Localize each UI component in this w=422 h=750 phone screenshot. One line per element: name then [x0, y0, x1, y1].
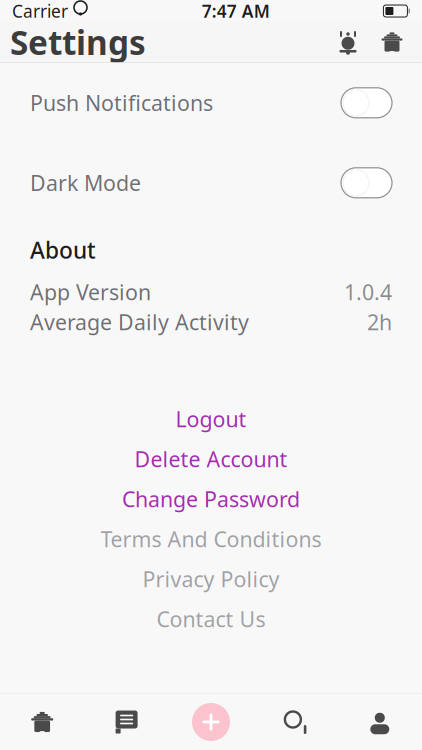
staticText: Privacy Policy [142, 565, 279, 593]
staticText: Settings [10, 20, 146, 64]
button[interactable]: Push Notifications [0, 63, 422, 143]
button[interactable]: Dark Mode [0, 143, 422, 223]
staticText: 2h [367, 308, 392, 336]
button[interactable]: Search [253, 694, 338, 750]
staticText: About [30, 235, 96, 265]
staticText: Delete Account [134, 445, 287, 473]
staticText: Dark Mode [30, 169, 141, 197]
staticText: Carrier [12, 0, 68, 22]
button[interactable]: Notifications [326, 22, 370, 62]
staticText: Push Notifications [30, 89, 213, 117]
button[interactable]: Privacy Policy [0, 559, 422, 599]
staticText: Contact Us [156, 605, 265, 633]
staticText: Average Daily Activity [30, 308, 249, 336]
button[interactable]: Messages [84, 694, 169, 750]
button[interactable]: Change Password [0, 479, 422, 519]
staticText: Change Password [122, 485, 300, 513]
button[interactable]: Profile [338, 694, 422, 750]
button[interactable]: Contact Us [0, 599, 422, 639]
button[interactable]: Terms And Conditions [0, 519, 422, 559]
button[interactable]: Home [370, 22, 414, 62]
staticText: 7:47 AM [202, 0, 270, 22]
button[interactable]: Home [0, 694, 84, 750]
button[interactable]: Delete Account [0, 439, 422, 479]
staticText: 1.0.4 [344, 278, 392, 306]
button[interactable]: Logout [0, 399, 422, 439]
staticText: Logout [175, 405, 246, 433]
staticText: App Version [30, 278, 151, 306]
button[interactable]: Add [169, 694, 253, 750]
staticText: Terms And Conditions [100, 525, 321, 553]
